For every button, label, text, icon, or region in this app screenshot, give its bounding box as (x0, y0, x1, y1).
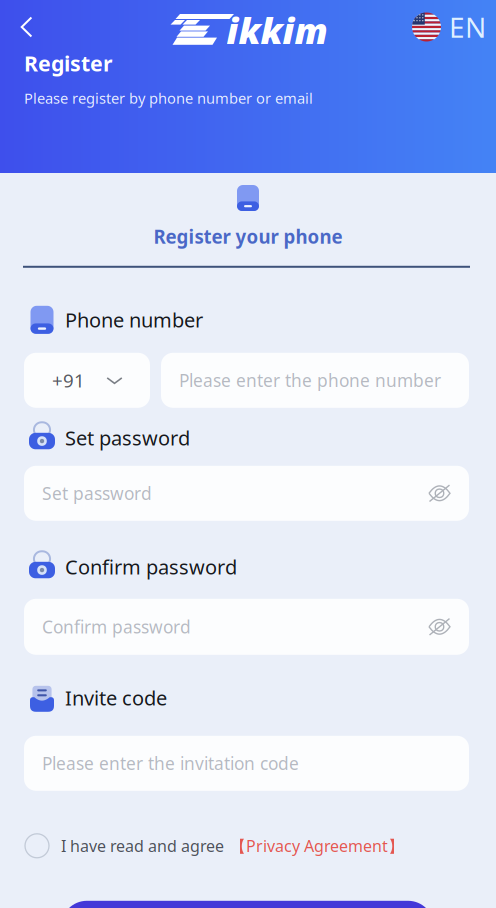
button[interactable]: Register (61, 901, 434, 908)
staticText: Confirm password (42, 615, 191, 638)
button[interactable]: Back (10, 7, 44, 47)
staticText: ikkim (226, 6, 327, 54)
staticText: Register (24, 49, 113, 77)
staticText: Please register by phone number or email (24, 88, 313, 108)
button[interactable]: Please enter the phone number (161, 353, 469, 408)
staticText: I have read and agree (61, 835, 224, 856)
staticText: Please enter the invitation code (42, 752, 299, 775)
staticText: Invite code (65, 684, 167, 711)
staticText: Confirm password (65, 553, 237, 580)
staticText: Register your phone (153, 224, 342, 249)
staticText: Phone number (65, 306, 203, 333)
staticText: +91 (52, 368, 85, 393)
button[interactable]: Language English (412, 7, 486, 47)
staticText: EN (449, 8, 486, 46)
button[interactable]: I have read and agree (0, 834, 496, 858)
button[interactable]: Set password (24, 466, 469, 521)
staticText: Set password (42, 482, 152, 505)
staticText: Please enter the phone number (179, 369, 441, 392)
button[interactable]: Please enter the invitation code (24, 736, 469, 791)
staticText: 【Privacy Agreement】 (230, 835, 404, 856)
button[interactable]: +91 (24, 353, 150, 408)
staticText: Set password (65, 424, 190, 451)
button[interactable]: Confirm password (24, 599, 469, 655)
